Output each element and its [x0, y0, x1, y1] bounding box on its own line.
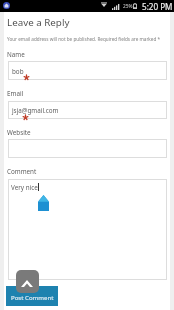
staticText: Name — [7, 50, 25, 59]
button[interactable]: Scroll to top — [16, 270, 39, 293]
button[interactable] — [8, 61, 167, 80]
staticText: Leave a Reply — [7, 16, 70, 29]
button[interactable] — [8, 101, 167, 119]
staticText: jsja@gmail.com — [12, 106, 59, 115]
staticText: Your email address will not be published… — [7, 36, 161, 42]
button[interactable] — [8, 179, 167, 280]
staticText: bob — [12, 67, 24, 76]
button[interactable]: Post Comment — [6, 286, 58, 306]
staticText: Post Comment — [11, 293, 54, 301]
staticText: 25% — [123, 3, 133, 10]
staticText: Very nice! — [11, 183, 40, 192]
button[interactable] — [8, 139, 167, 158]
staticText: Email — [7, 89, 24, 98]
staticText: Website — [7, 128, 31, 137]
staticText: Comment — [7, 167, 37, 176]
staticText: 5:20 PM — [142, 1, 173, 12]
